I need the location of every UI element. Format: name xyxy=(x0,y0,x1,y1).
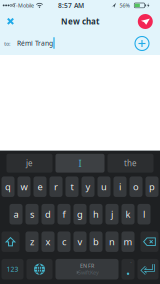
staticText: h xyxy=(93,208,99,220)
button[interactable]: the xyxy=(107,154,153,173)
button[interactable]: o xyxy=(129,176,142,197)
button[interactable]: f xyxy=(57,204,70,224)
staticText: p xyxy=(149,180,155,193)
staticText: to: xyxy=(4,40,10,47)
button[interactable]: p xyxy=(145,176,158,197)
button[interactable]: Delete xyxy=(140,231,158,252)
staticText: m xyxy=(123,235,132,248)
button[interactable]: v xyxy=(73,231,86,252)
button[interactable]: n xyxy=(105,231,118,252)
staticText: SwiftKey xyxy=(78,269,99,276)
button[interactable]: Return xyxy=(137,259,158,279)
button[interactable]: Send xyxy=(138,14,153,29)
button[interactable]: Period xyxy=(121,259,134,279)
button[interactable]: t xyxy=(65,176,78,197)
button[interactable]: Shift xyxy=(1,231,19,252)
button[interactable]: z xyxy=(25,231,38,252)
button[interactable]: h xyxy=(89,204,102,224)
staticText: e xyxy=(37,180,42,193)
staticText: T-Mobile xyxy=(13,2,34,9)
staticText: s xyxy=(30,208,34,220)
button[interactable]: d xyxy=(41,204,54,224)
button[interactable]: 123 xyxy=(1,259,23,279)
staticText: v xyxy=(77,235,82,248)
staticText: 8:57 AM xyxy=(58,1,84,10)
staticText: u xyxy=(101,180,107,193)
staticText: ' xyxy=(130,261,131,266)
staticText: EN FR xyxy=(80,262,94,269)
button[interactable]: s xyxy=(25,204,38,224)
button[interactable]: Add participant xyxy=(135,36,149,50)
button[interactable]: I xyxy=(55,154,104,173)
button[interactable]: j xyxy=(105,204,118,224)
staticText: a xyxy=(13,208,18,220)
button[interactable]: c xyxy=(57,231,70,252)
staticText: b xyxy=(93,235,99,248)
button[interactable]: u xyxy=(97,176,110,197)
button[interactable]: x xyxy=(41,231,54,252)
staticText: t xyxy=(70,180,73,193)
button[interactable]: b xyxy=(89,231,102,252)
button[interactable]: a xyxy=(9,204,22,224)
staticText: New chat xyxy=(61,16,99,27)
staticText: d xyxy=(45,208,51,220)
button[interactable]: q xyxy=(1,176,14,197)
button[interactable]: i xyxy=(113,176,126,197)
button[interactable]: k xyxy=(121,204,134,224)
button[interactable]: m xyxy=(121,231,134,252)
button[interactable]: Switch keyboard xyxy=(26,259,52,279)
staticText: k xyxy=(125,208,130,220)
staticText: Rémi Trang xyxy=(17,39,53,48)
button[interactable]: Close xyxy=(7,18,14,25)
button[interactable]: w xyxy=(17,176,30,197)
button[interactable]: je xyxy=(6,154,52,173)
staticText: the xyxy=(124,158,137,168)
staticText: j xyxy=(111,208,113,220)
staticText: c xyxy=(62,235,66,248)
staticText: 123 xyxy=(6,265,18,274)
staticText: I xyxy=(78,157,81,169)
staticText: je xyxy=(26,158,33,168)
button[interactable]: Space xyxy=(55,259,118,279)
staticText: o xyxy=(133,180,139,193)
staticText: x xyxy=(45,235,50,248)
button[interactable]: e xyxy=(33,176,46,197)
staticText: l xyxy=(143,208,145,220)
staticText: z xyxy=(30,235,34,248)
button[interactable]: r xyxy=(49,176,62,197)
staticText: 56% xyxy=(119,2,129,9)
staticText: f xyxy=(62,208,65,220)
button[interactable]: y xyxy=(81,176,94,197)
staticText: n xyxy=(109,235,115,248)
staticText: y xyxy=(85,180,90,193)
staticText: i xyxy=(119,180,121,193)
staticText: q xyxy=(5,180,11,193)
staticText: w xyxy=(20,180,27,193)
staticText: g xyxy=(77,208,83,220)
staticText: r xyxy=(54,180,58,193)
button[interactable]: l xyxy=(137,204,150,224)
button[interactable]: g xyxy=(73,204,86,224)
